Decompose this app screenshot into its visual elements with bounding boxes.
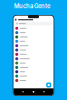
button[interactable] xyxy=(13,26,53,30)
button[interactable] xyxy=(13,48,53,52)
button[interactable] xyxy=(13,61,53,65)
button[interactable]: Home xyxy=(33,91,34,93)
button[interactable] xyxy=(13,78,53,83)
button[interactable]: Recents xyxy=(43,91,45,92)
button[interactable] xyxy=(13,57,53,61)
button[interactable] xyxy=(13,52,53,56)
button[interactable] xyxy=(13,21,53,25)
button[interactable] xyxy=(13,30,53,35)
button[interactable]: New chat xyxy=(46,82,51,87)
button[interactable] xyxy=(13,74,53,78)
button[interactable] xyxy=(13,70,53,74)
button[interactable] xyxy=(13,43,53,48)
button[interactable] xyxy=(13,35,53,39)
button[interactable]: Back xyxy=(22,91,24,92)
staticText: Mucha Gente xyxy=(14,2,50,10)
button[interactable] xyxy=(13,65,53,69)
button[interactable] xyxy=(13,39,53,43)
